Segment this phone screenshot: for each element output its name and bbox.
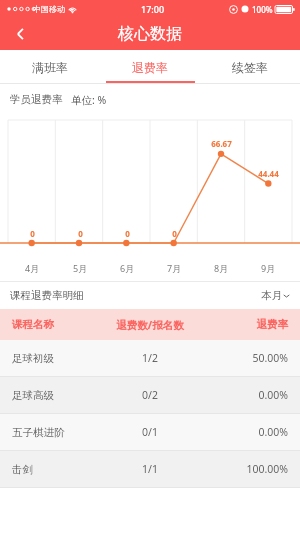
staticText: 课程名称 [12, 318, 98, 331]
staticText: 0/1 [98, 425, 202, 439]
staticText: 9月 [261, 262, 276, 274]
staticText: 66.67 [211, 138, 232, 149]
staticText: 100.00% [202, 462, 288, 476]
staticText: 0 [125, 228, 130, 239]
staticText: 续签率 [232, 60, 268, 75]
staticText: 学员退费率 [10, 93, 63, 106]
staticText: 中国移动 [33, 4, 65, 14]
staticText: 本月 [261, 289, 282, 302]
button[interactable]: 续签率 [200, 50, 300, 84]
staticText: 退费数/报名数 [98, 318, 202, 332]
button[interactable]: Back [0, 18, 42, 50]
button[interactable]: 退费率 [100, 50, 200, 84]
staticText: 足球高级 [12, 389, 98, 402]
staticText: 50.00% [202, 351, 288, 365]
staticText: 0 [30, 228, 35, 239]
staticText: 退费率 [132, 60, 168, 75]
button[interactable]: 足球初级 [0, 340, 300, 376]
button[interactable]: 足球高级 [0, 377, 300, 413]
staticText: 1/2 [98, 351, 202, 365]
staticText: 6月 [120, 262, 135, 274]
staticText: 1/1 [98, 462, 202, 476]
staticText: 7月 [167, 262, 182, 274]
staticText: 课程退费率明细 [10, 289, 84, 302]
staticText: 100% [252, 4, 273, 15]
button[interactable]: 本月 [261, 289, 290, 302]
staticText: 5月 [73, 262, 88, 274]
staticText: 0.00% [202, 425, 288, 439]
staticText: 4月 [25, 262, 40, 274]
staticText: 0 [78, 228, 83, 239]
staticText: 击剑 [12, 463, 98, 476]
staticText: 满班率 [32, 60, 68, 75]
staticText: 0/2 [98, 388, 202, 402]
staticText: 17:00 [141, 3, 165, 15]
button[interactable]: 满班率 [0, 50, 100, 84]
staticText: 退费率 [202, 318, 288, 331]
staticText: 8月 [214, 262, 229, 274]
button[interactable]: 击剑 [0, 451, 300, 487]
staticText: 0.00% [202, 388, 288, 402]
staticText: 44.44 [258, 168, 279, 179]
button[interactable]: 五子棋进阶 [0, 414, 300, 450]
staticText: 单位: % [71, 93, 107, 107]
staticText: 核心数据 [118, 24, 182, 44]
staticText: 0 [172, 228, 177, 239]
staticText: 五子棋进阶 [12, 426, 98, 439]
staticText: 足球初级 [12, 352, 98, 365]
